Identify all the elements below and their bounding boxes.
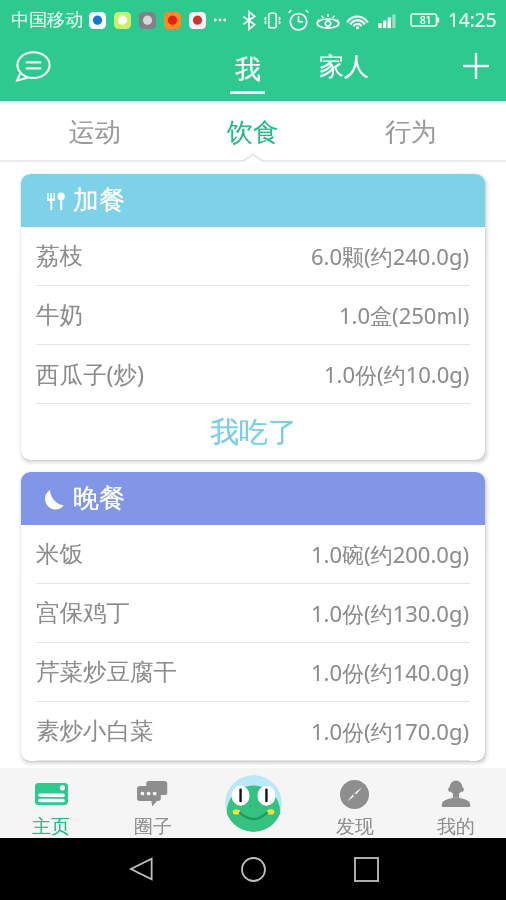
button[interactable]: Messages xyxy=(9,42,57,90)
button[interactable]: 素炒小白菜 xyxy=(21,702,485,760)
staticText: 主页 xyxy=(32,815,70,838)
button[interactable]: Recents xyxy=(344,847,388,891)
staticText: 1.0份(约10.0g) xyxy=(324,359,470,389)
button[interactable]: 西瓜子(炒) xyxy=(21,345,485,403)
button[interactable]: Add xyxy=(452,42,500,90)
staticText: 行为 xyxy=(385,116,437,149)
staticText: 我 xyxy=(235,53,261,86)
staticText: 芹菜炒豆腐干 xyxy=(36,657,177,687)
staticText: 运动 xyxy=(69,116,121,149)
staticText: 发现 xyxy=(336,815,374,838)
button[interactable]: 芹菜炒豆腐干 xyxy=(21,643,485,701)
button[interactable]: 运动 xyxy=(16,101,174,162)
staticText: 我的 xyxy=(437,815,475,838)
button[interactable]: Back xyxy=(119,847,163,891)
staticText: 我吃了 xyxy=(210,414,297,451)
button[interactable]: Assistant xyxy=(225,775,282,832)
button[interactable]: 饮食 xyxy=(174,101,332,162)
staticText: 晚餐 xyxy=(73,482,125,515)
button[interactable]: 行为 xyxy=(332,101,490,162)
staticText: 加餐 xyxy=(73,184,125,217)
staticText: 西瓜子(炒) xyxy=(36,358,145,390)
staticText: 圈子 xyxy=(134,815,172,838)
button[interactable]: 我 xyxy=(213,40,281,101)
staticText: 1.0盒(250ml) xyxy=(339,300,470,330)
staticText: 中国移动 xyxy=(11,9,83,32)
button[interactable]: 主页 xyxy=(0,768,102,838)
button[interactable]: 圈子 xyxy=(102,768,203,838)
staticText: 1.0碗(约200.0g) xyxy=(311,539,470,569)
staticText: 家人 xyxy=(319,51,369,82)
button[interactable]: 米饭 xyxy=(21,525,485,583)
staticText: 米饭 xyxy=(36,539,83,569)
button[interactable]: 我的 xyxy=(405,768,506,838)
staticText: 素炒小白菜 xyxy=(36,716,154,746)
button[interactable]: 我吃了 xyxy=(21,404,485,460)
staticText: 1.0份(约140.0g) xyxy=(311,657,470,687)
staticText: 1.0份(约170.0g) xyxy=(311,716,470,746)
button[interactable]: 家人 xyxy=(300,40,388,101)
staticText: 1.0份(约130.0g) xyxy=(311,598,470,628)
button[interactable]: 发现 xyxy=(304,768,405,838)
button[interactable]: 宫保鸡丁 xyxy=(21,584,485,642)
staticText: 荔枝 xyxy=(36,241,83,271)
button[interactable]: Home xyxy=(231,847,275,891)
staticText: 牛奶 xyxy=(36,300,83,330)
staticText: 14:25 xyxy=(448,7,497,33)
staticText: 81 xyxy=(420,13,432,27)
staticText: 6.0颗(约240.0g) xyxy=(311,241,470,271)
button[interactable]: 荔枝 xyxy=(21,227,485,285)
staticText: 宫保鸡丁 xyxy=(36,598,130,628)
staticText: 饮食 xyxy=(227,116,279,149)
button[interactable]: 牛奶 xyxy=(21,286,485,344)
